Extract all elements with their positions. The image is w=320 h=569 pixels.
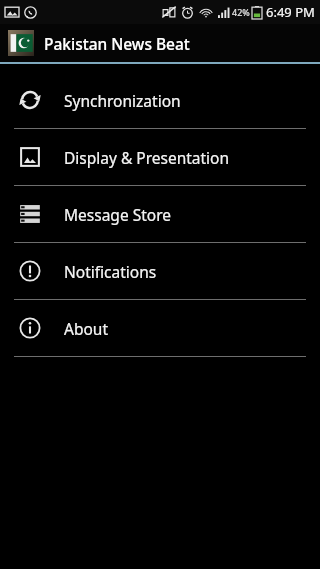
button[interactable]: Display & Presentation [0,129,320,185]
button[interactable]: About [0,300,320,356]
button[interactable]: Message Store [0,186,320,242]
staticText: Notifications [64,261,157,282]
button[interactable]: Notifications [0,243,320,299]
staticText: Synchronization [64,90,181,111]
staticText: 6:49 PM [266,3,315,21]
staticText: About [64,318,108,339]
staticText: 42% [232,6,250,18]
staticText: Message Store [64,204,171,225]
staticText: Pakistan News Beat [44,33,190,54]
button[interactable]: Synchronization [0,72,320,128]
staticText: Display & Presentation [64,147,230,168]
